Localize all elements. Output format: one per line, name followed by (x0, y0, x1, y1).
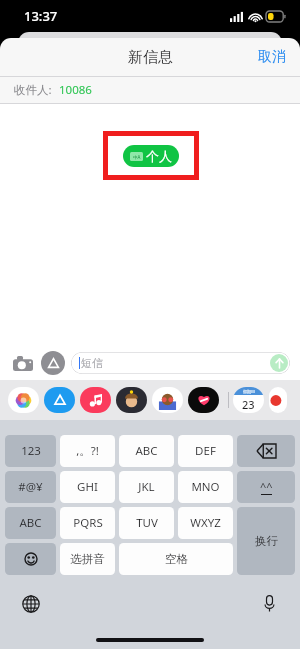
button[interactable]: App (8, 387, 39, 413)
button[interactable]: App (152, 387, 183, 413)
staticText: 23 (242, 397, 255, 412)
button[interactable]: Dictation (256, 591, 282, 617)
staticText: 新信息 (128, 48, 173, 67)
staticText: 13:37 (24, 7, 58, 25)
button[interactable]: More apps (269, 387, 287, 413)
staticText: ,。?! (76, 443, 99, 459)
button[interactable]: Symbols (237, 471, 295, 503)
staticText: PQRS (73, 515, 103, 531)
button[interactable]: Delete (237, 435, 295, 467)
button[interactable]: App (188, 387, 219, 413)
staticText: 选拼音 (70, 552, 105, 566)
staticText: 空格 (165, 552, 188, 566)
button[interactable]: 取消 (244, 42, 300, 72)
button[interactable]: PQRS (60, 507, 115, 539)
staticText: GHI (77, 479, 98, 495)
button[interactable]: GHI (60, 471, 115, 503)
button[interactable]: DEF (178, 435, 233, 467)
staticText: TUV (136, 515, 158, 531)
button[interactable]: 收件人: (0, 77, 300, 103)
staticText: 中A (133, 154, 141, 160)
staticText: 短信 (81, 356, 103, 370)
button[interactable]: WXYZ (178, 507, 233, 539)
button[interactable]: 短信 (71, 352, 290, 374)
button[interactable]: App (44, 387, 75, 413)
button[interactable]: App (116, 387, 147, 413)
staticText: DEF (195, 443, 216, 459)
button[interactable]: Switch keyboard (18, 591, 44, 617)
button[interactable]: Send (270, 354, 288, 372)
staticText: ABC (19, 515, 42, 531)
button[interactable]: ABC (5, 507, 56, 539)
button[interactable]: Camera (10, 350, 36, 376)
button[interactable]: ABC (119, 435, 174, 467)
staticText: 个人 (146, 148, 172, 164)
staticText: 10086 (59, 82, 92, 98)
staticText: ^^ (260, 479, 273, 494)
button[interactable]: App (233, 387, 264, 413)
button[interactable]: JKL (119, 471, 174, 503)
button[interactable]: ,。?! (60, 435, 115, 467)
button[interactable]: App Store (41, 351, 65, 375)
button[interactable]: 换行 (237, 507, 295, 575)
staticText: MNO (191, 479, 220, 495)
button[interactable]: 选拼音 (60, 543, 115, 575)
button[interactable]: 空格 (119, 543, 233, 575)
staticText: JKL (138, 479, 155, 495)
button[interactable]: #@¥ (5, 471, 56, 503)
button[interactable]: MNO (178, 471, 233, 503)
button[interactable]: 中A (123, 145, 179, 167)
staticText: ABC (135, 443, 158, 459)
button[interactable]: Emoji (5, 543, 56, 575)
staticText: 换行 (255, 534, 278, 548)
staticText: 假期日 (243, 389, 255, 394)
button[interactable]: TUV (119, 507, 174, 539)
staticText: WXYZ (190, 515, 221, 531)
staticText: 收件人: (14, 82, 52, 98)
staticText: #@¥ (18, 479, 43, 495)
staticText: 取消 (258, 48, 286, 66)
button[interactable]: 123 (5, 435, 56, 467)
button[interactable]: App (80, 387, 111, 413)
staticText: 123 (21, 443, 41, 459)
